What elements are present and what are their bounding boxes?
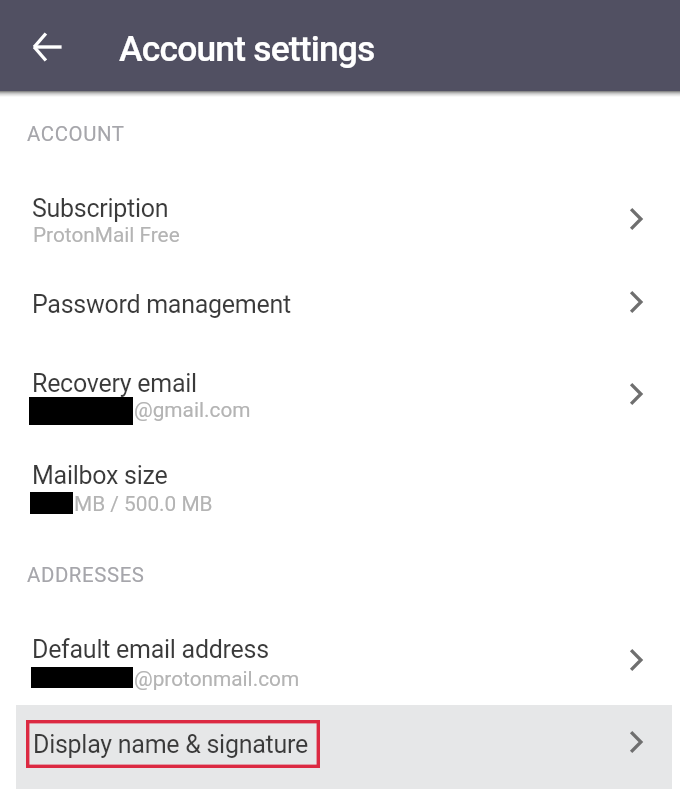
staticText: Recovery email xyxy=(32,369,197,398)
staticText: ProtonMail Free xyxy=(33,223,180,247)
staticText: ACCOUNT xyxy=(27,122,125,146)
staticText: Password management xyxy=(32,290,291,319)
staticText: Subscription xyxy=(32,194,169,223)
staticText: Display name & signature xyxy=(33,730,308,759)
staticText: @gmail.com xyxy=(134,398,251,422)
staticText: Mailbox size xyxy=(32,461,168,490)
button[interactable]: Subscription xyxy=(0,180,680,252)
button[interactable]: Mailbox size xyxy=(0,450,680,524)
staticText: Default email address xyxy=(32,635,269,664)
button[interactable]: Display name & signature xyxy=(16,705,672,789)
button[interactable]: Password management xyxy=(0,276,680,328)
staticText: MB / 500.0 MB xyxy=(74,492,213,516)
staticText: @protonmail.com xyxy=(134,667,300,691)
button[interactable]: Default email address xyxy=(0,622,680,696)
button[interactable]: Navigate up xyxy=(18,18,74,74)
staticText: Account settings xyxy=(119,28,375,69)
button[interactable]: Recovery email xyxy=(0,356,680,434)
staticText: ADDRESSES xyxy=(27,563,145,587)
